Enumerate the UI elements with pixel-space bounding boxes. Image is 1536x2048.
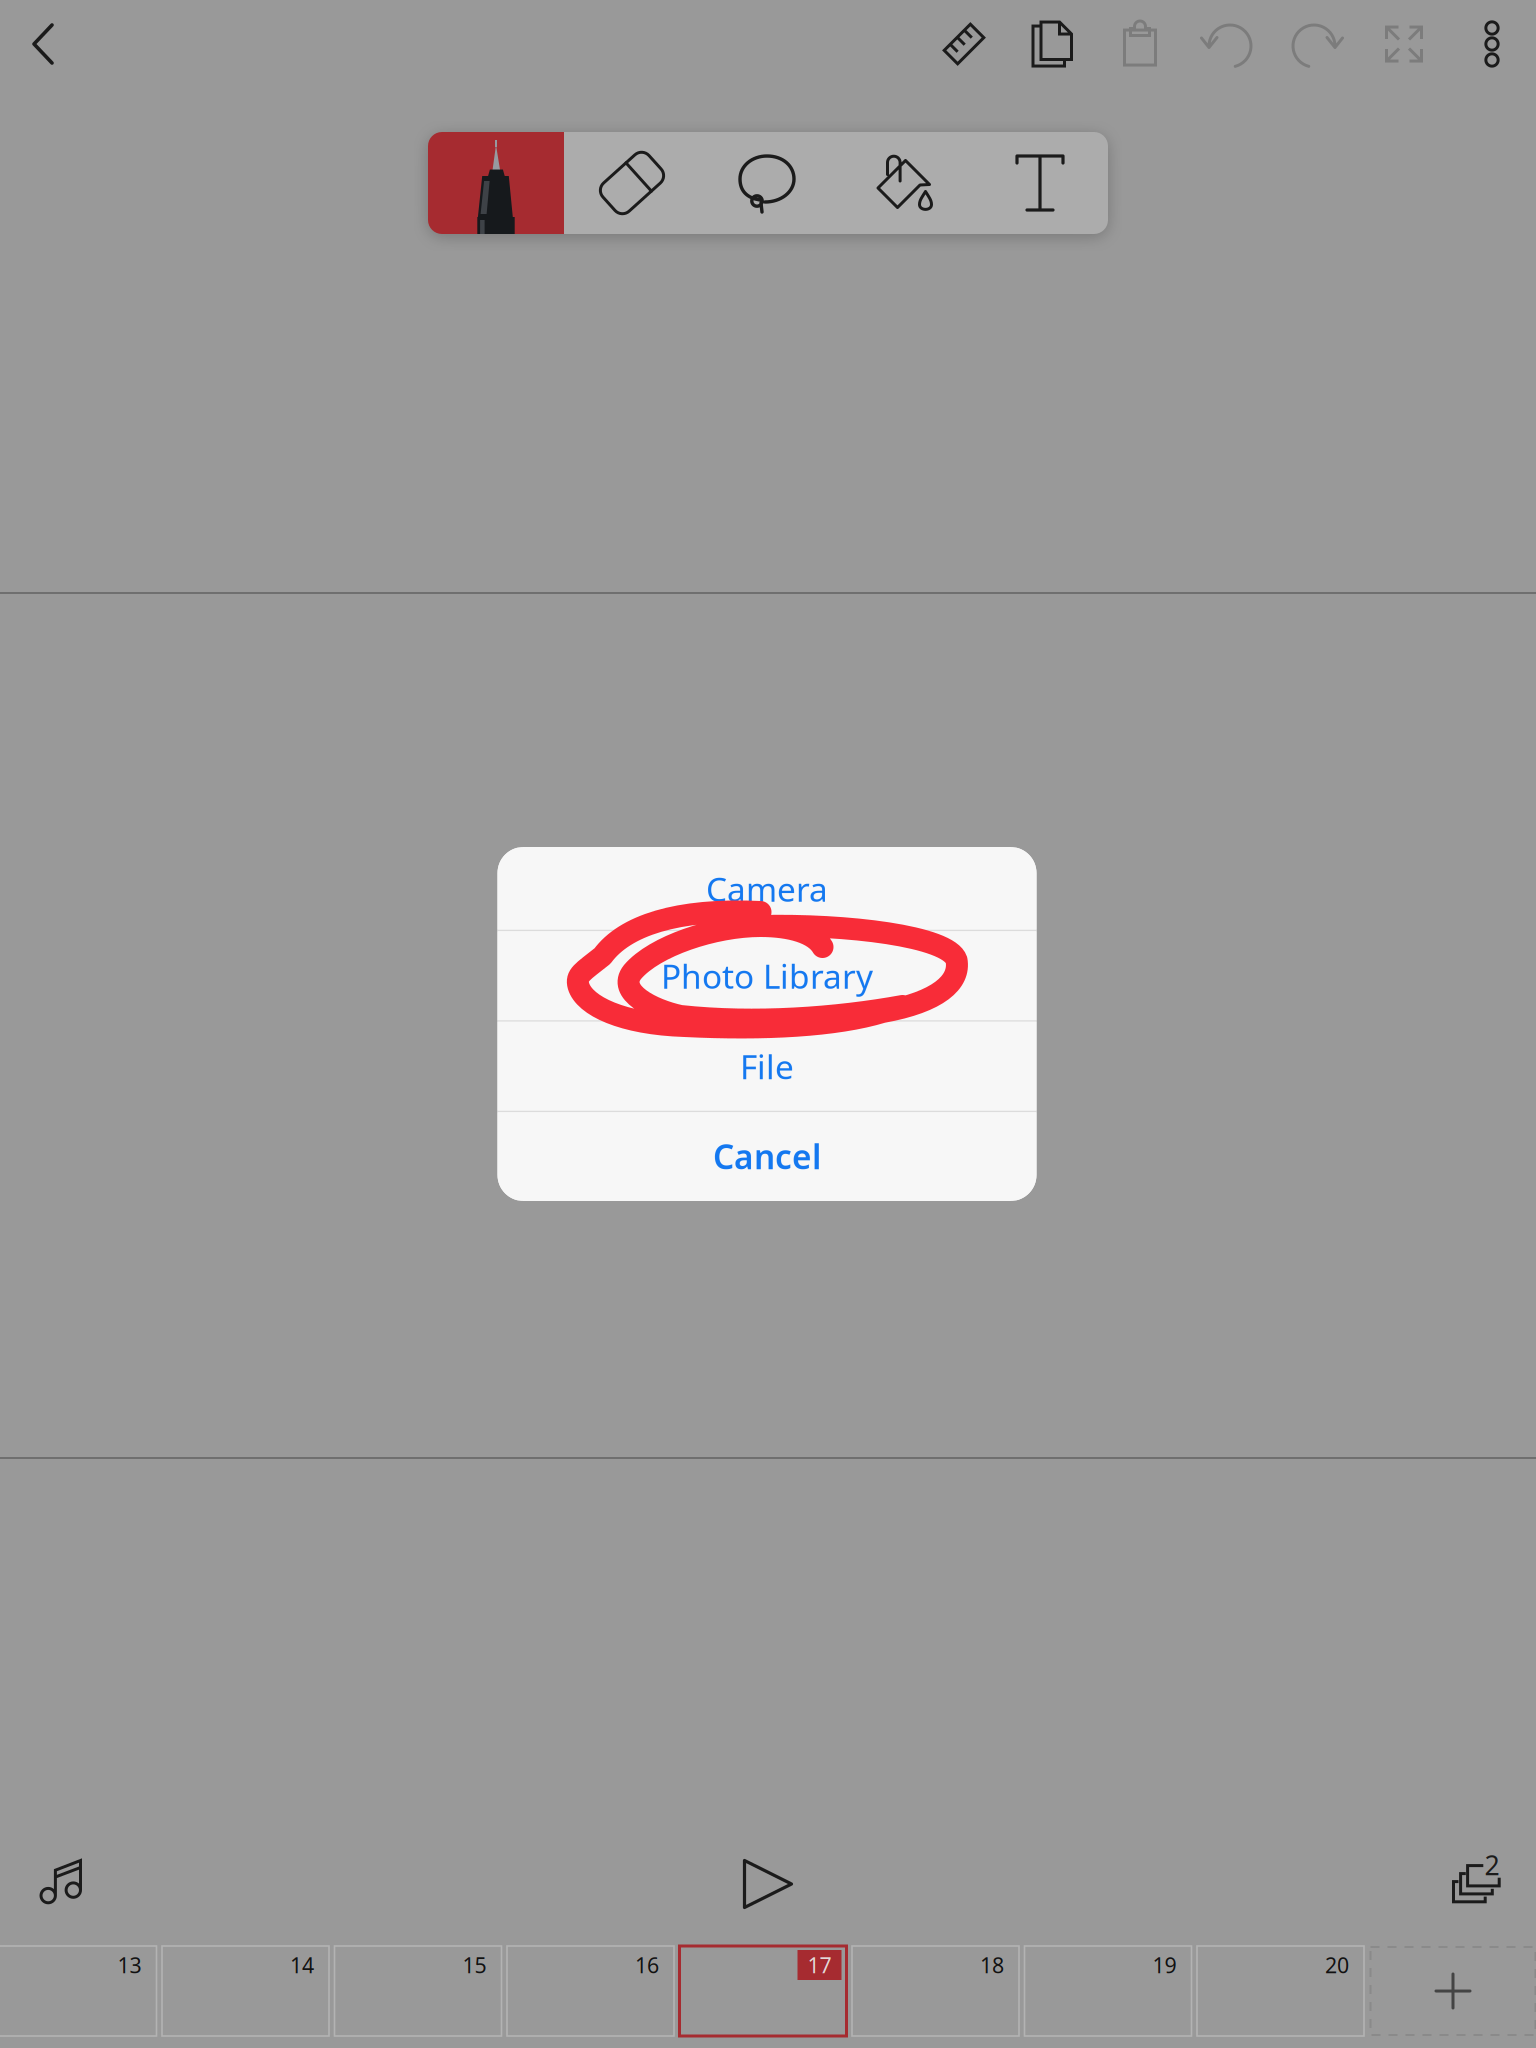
button[interactable]: Paste (1098, 2, 1182, 86)
staticText: 19 (1152, 1951, 1176, 1979)
staticText: Photo Library (661, 954, 873, 998)
button[interactable]: 15 (334, 1946, 501, 2036)
button[interactable]: 14 (162, 1946, 329, 2036)
button[interactable]: Eraser (564, 132, 700, 234)
staticText: 13 (117, 1951, 141, 1979)
button[interactable]: Photo Library (497, 931, 1036, 1020)
staticText: Camera (706, 867, 828, 911)
button[interactable]: 16 (507, 1946, 674, 2036)
button[interactable]: Back (1, 2, 85, 86)
button[interactable]: Lasso (700, 132, 836, 234)
button[interactable]: Camera (497, 848, 1036, 930)
button[interactable]: File (497, 1022, 1036, 1111)
button[interactable]: Fill (836, 132, 972, 234)
button[interactable]: 19 (1024, 1946, 1191, 2036)
button[interactable]: Pen (428, 132, 564, 234)
staticText: 18 (980, 1951, 1004, 1979)
staticText: 20 (1325, 1951, 1349, 1979)
button[interactable]: 20 (1197, 1946, 1364, 2036)
button[interactable]: 13 (0, 1946, 156, 2036)
button[interactable]: Undo (1186, 2, 1270, 86)
button[interactable]: Audio (20, 1838, 104, 1922)
button[interactable]: Copy (1010, 2, 1094, 86)
button[interactable]: Cancel (497, 1112, 1036, 1200)
button[interactable]: Play (726, 1842, 810, 1926)
button[interactable]: 18 (852, 1946, 1019, 2036)
staticText: Cancel (713, 1134, 821, 1178)
staticText: 17 (807, 1951, 831, 1979)
button[interactable]: 17 (679, 1946, 846, 2036)
staticText: 14 (290, 1951, 314, 1979)
button[interactable]: Layers (1434, 1838, 1518, 1922)
button[interactable]: Ruler (922, 2, 1006, 86)
button[interactable]: Redo (1274, 2, 1358, 86)
button[interactable]: Add frame (1369, 1946, 1536, 2036)
button[interactable]: Full screen (1362, 2, 1446, 86)
staticText: 16 (635, 1951, 659, 1979)
staticText: 15 (462, 1951, 486, 1979)
staticText: 2 (1484, 1847, 1499, 1883)
button[interactable]: More (1450, 2, 1534, 86)
button[interactable]: Text (972, 132, 1108, 234)
staticText: File (740, 1044, 794, 1088)
